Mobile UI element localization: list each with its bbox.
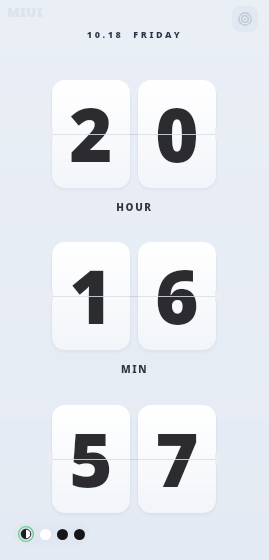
- staticText: MIUI: [7, 3, 43, 21]
- button[interactable]: 5: [52, 405, 130, 513]
- staticText: 5: [69, 408, 113, 509]
- button[interactable]: Theme dark: [57, 529, 68, 540]
- staticText: 6: [155, 245, 199, 346]
- button[interactable]: Theme black: [74, 529, 85, 540]
- button[interactable]: 1: [52, 242, 130, 350]
- button[interactable]: 2: [52, 80, 130, 188]
- staticText: 7: [155, 408, 199, 509]
- button[interactable]: 7: [138, 405, 216, 513]
- button[interactable]: Theme white: [40, 529, 51, 540]
- button[interactable]: Settings: [232, 6, 258, 32]
- staticText: 2: [69, 83, 113, 184]
- staticText: 1: [69, 245, 113, 346]
- staticText: 10.18 FRIDAY: [0, 28, 269, 40]
- staticText: 0: [155, 83, 199, 184]
- button[interactable]: Theme black and white: [18, 526, 34, 542]
- staticText: MIN: [0, 362, 269, 376]
- staticText: HOUR: [0, 200, 269, 214]
- button[interactable]: 0: [138, 80, 216, 188]
- button[interactable]: 6: [138, 242, 216, 350]
